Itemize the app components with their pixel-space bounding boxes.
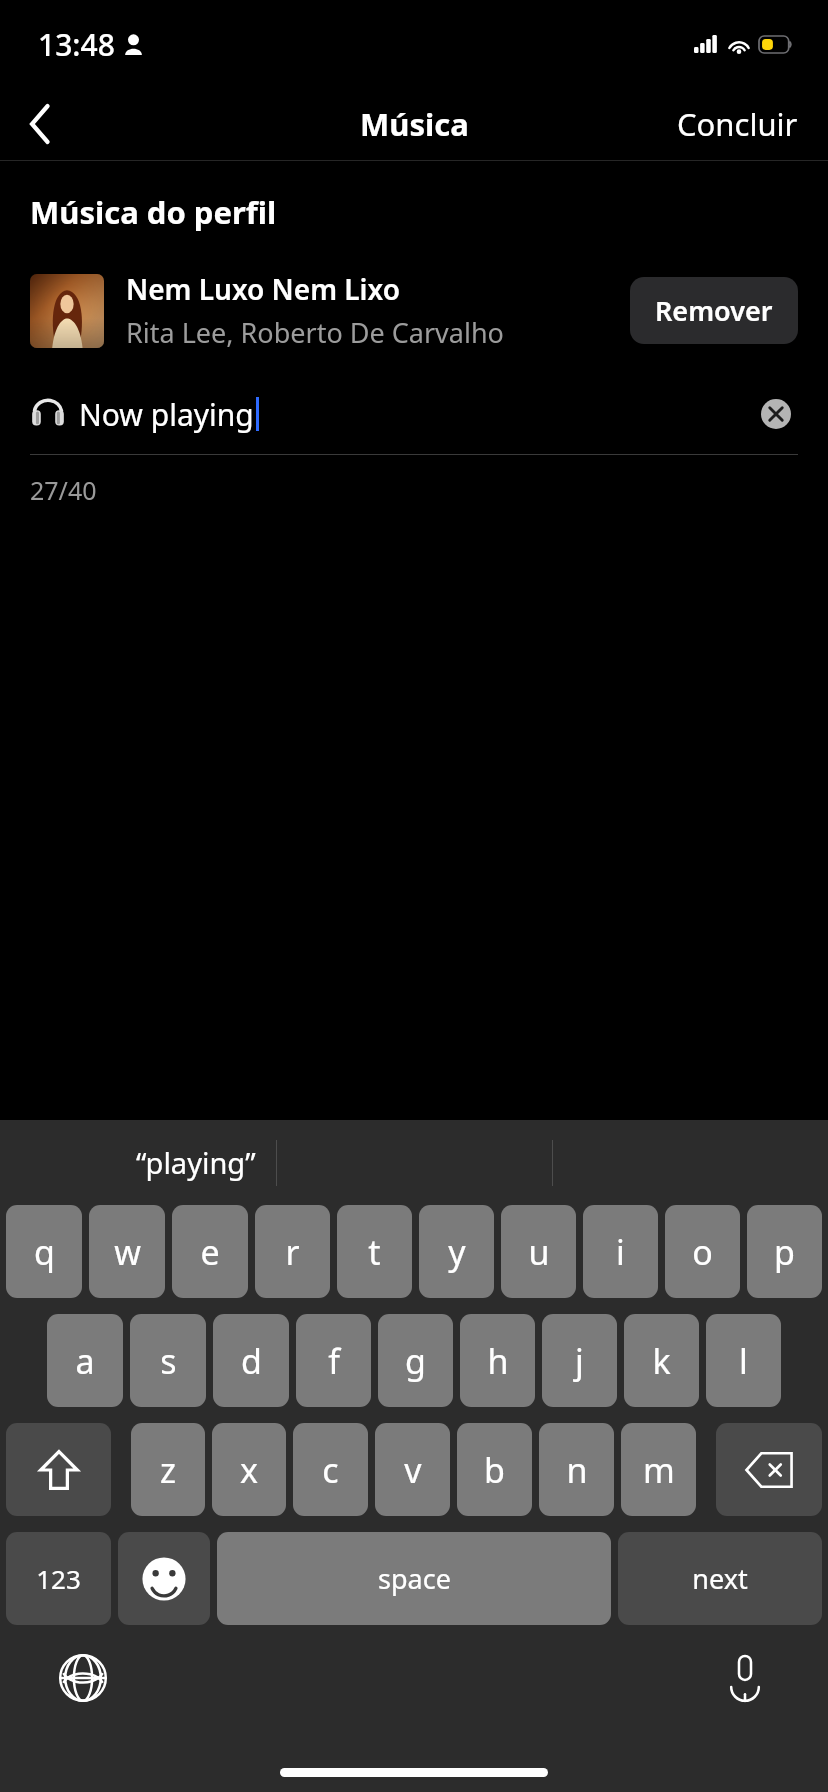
staticText: next [692, 1560, 748, 1597]
button[interactable]: “playing” [136, 1143, 256, 1182]
staticText: y [448, 1229, 466, 1275]
staticText: 27/40 [30, 473, 97, 507]
button[interactable]: s [130, 1314, 206, 1407]
button[interactable]: y [419, 1205, 494, 1298]
button[interactable]: Emoji [118, 1532, 210, 1625]
button[interactable]: Ditado por voz [714, 1647, 776, 1709]
button[interactable]: f [296, 1314, 371, 1407]
button[interactable]: l [706, 1314, 781, 1407]
button[interactable]: space [217, 1532, 611, 1625]
staticText: d [241, 1338, 262, 1384]
button[interactable]: j [542, 1314, 617, 1407]
staticText: u [528, 1229, 550, 1275]
button[interactable]: r [255, 1205, 330, 1298]
staticText: Nem Luxo Nem Lixo [126, 270, 400, 308]
button[interactable]: o [665, 1205, 740, 1298]
button[interactable]: m [621, 1423, 696, 1516]
button[interactable]: Concluir [647, 93, 828, 155]
staticText: v [404, 1447, 422, 1493]
button[interactable]: 123 [6, 1532, 111, 1625]
staticText: b [484, 1447, 505, 1493]
button[interactable]: Voltar [10, 94, 70, 154]
staticText: k [652, 1338, 671, 1384]
staticText: Música do perfil [30, 191, 277, 233]
button[interactable]: v [375, 1423, 450, 1516]
staticText: Rita Lee, Roberto De Carvalho [126, 314, 504, 351]
button[interactable]: Shift [6, 1423, 111, 1516]
staticText: space [378, 1560, 451, 1597]
staticText: o [692, 1229, 713, 1275]
staticText: s [160, 1338, 177, 1384]
staticText: a [75, 1338, 95, 1384]
button[interactable]: k [624, 1314, 699, 1407]
button[interactable]: Apagar [716, 1423, 822, 1516]
staticText: x [240, 1447, 258, 1493]
staticText: Now playing [79, 394, 254, 435]
staticText: 13:48 [38, 24, 115, 65]
staticText: n [566, 1447, 588, 1493]
button[interactable]: Limpar texto [754, 392, 798, 436]
button[interactable]: a [47, 1314, 123, 1407]
button[interactable]: w [89, 1205, 165, 1298]
button[interactable]: n [539, 1423, 614, 1516]
button[interactable]: Remover [630, 277, 798, 344]
button[interactable]: Mudar idioma [52, 1647, 114, 1709]
button[interactable]: next [618, 1532, 822, 1625]
button[interactable]: q [6, 1205, 82, 1298]
button[interactable]: t [337, 1205, 412, 1298]
staticText: f [328, 1338, 340, 1384]
staticText: p [774, 1229, 795, 1275]
staticText: Música [360, 103, 469, 145]
staticText: g [405, 1338, 426, 1384]
staticText: q [34, 1229, 55, 1275]
staticText: t [368, 1229, 381, 1275]
button[interactable]: x [212, 1423, 286, 1516]
staticText: z [160, 1447, 176, 1493]
staticText: l [739, 1338, 748, 1384]
staticText: Concluir [677, 103, 798, 145]
button[interactable]: b [457, 1423, 532, 1516]
button[interactable]: z [131, 1423, 205, 1516]
button[interactable]: d [213, 1314, 289, 1407]
button[interactable]: c [293, 1423, 368, 1516]
button[interactable]: h [460, 1314, 535, 1407]
staticText: Remover [655, 292, 773, 329]
staticText: w [114, 1229, 141, 1275]
staticText: 123 [36, 1561, 81, 1596]
staticText: i [616, 1229, 625, 1275]
staticText: e [200, 1229, 220, 1275]
button[interactable]: i [583, 1205, 658, 1298]
staticText: c [322, 1447, 339, 1493]
staticText: r [285, 1229, 300, 1275]
button[interactable]: u [501, 1205, 576, 1298]
button[interactable]: e [172, 1205, 248, 1298]
button[interactable]: p [747, 1205, 822, 1298]
button[interactable]: g [378, 1314, 453, 1407]
staticText: j [575, 1338, 584, 1384]
staticText: m [643, 1447, 675, 1493]
staticText: h [487, 1338, 509, 1384]
